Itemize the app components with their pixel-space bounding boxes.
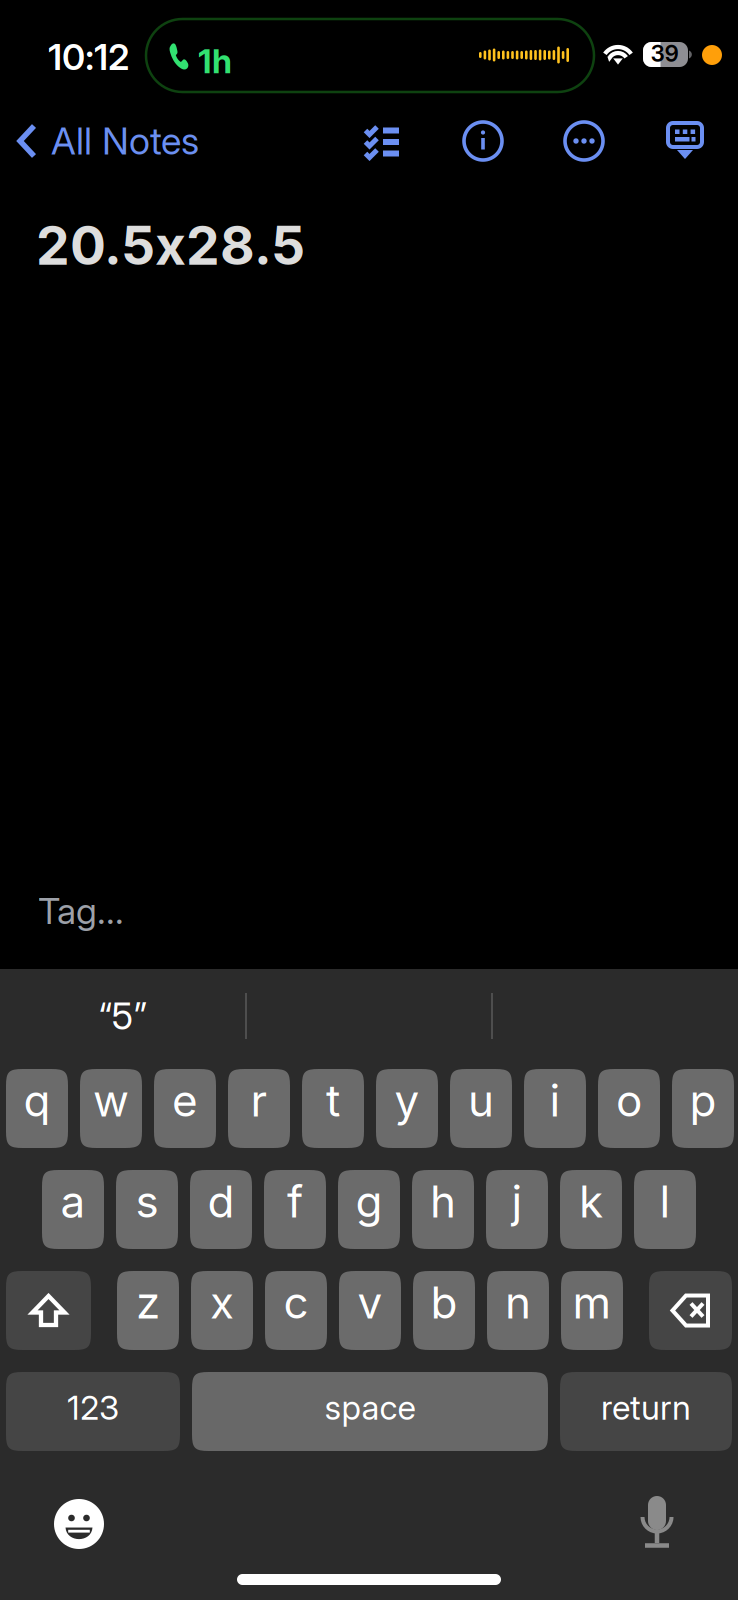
button[interactable]: q bbox=[6, 1069, 68, 1148]
button[interactable]: Emoji bbox=[39, 1484, 119, 1564]
staticText: l bbox=[659, 1175, 670, 1228]
button[interactable]: Dictate bbox=[617, 1482, 697, 1562]
staticText: space bbox=[324, 1387, 415, 1428]
button[interactable]: Tag... bbox=[38, 886, 198, 936]
button[interactable]: c bbox=[265, 1271, 327, 1350]
staticText: All Notes bbox=[51, 118, 199, 164]
button[interactable]: j bbox=[486, 1170, 548, 1249]
staticText: y bbox=[394, 1074, 419, 1127]
button[interactable]: i bbox=[524, 1069, 586, 1148]
staticText: q bbox=[23, 1074, 50, 1127]
button[interactable]: o bbox=[598, 1069, 660, 1148]
button[interactable]: “5” bbox=[0, 981, 246, 1051]
staticText: e bbox=[172, 1074, 198, 1127]
button[interactable]: y bbox=[376, 1069, 438, 1148]
button[interactable]: s bbox=[116, 1170, 178, 1249]
button[interactable]: e bbox=[154, 1069, 216, 1148]
staticText: g bbox=[355, 1175, 382, 1228]
staticText: 1h bbox=[198, 41, 232, 81]
staticText: 39 bbox=[650, 40, 678, 67]
staticText: v bbox=[357, 1276, 382, 1329]
button[interactable]: h bbox=[412, 1170, 474, 1249]
staticText: x bbox=[210, 1276, 234, 1329]
staticText: j bbox=[511, 1175, 522, 1228]
button[interactable]: r bbox=[228, 1069, 290, 1148]
button[interactable]: w bbox=[80, 1069, 142, 1148]
button[interactable]: Hide Keyboard bbox=[657, 112, 713, 168]
button[interactable]: space bbox=[192, 1372, 548, 1451]
staticText: r bbox=[250, 1074, 267, 1127]
button[interactable]: k bbox=[560, 1170, 622, 1249]
staticText: Tag... bbox=[38, 889, 124, 933]
button[interactable]: a bbox=[42, 1170, 104, 1249]
staticText: “5” bbox=[98, 993, 147, 1039]
staticText: w bbox=[93, 1074, 129, 1127]
button[interactable]: f bbox=[264, 1170, 326, 1249]
button[interactable]: d bbox=[190, 1170, 252, 1249]
button[interactable]: Info bbox=[455, 113, 511, 169]
button[interactable]: Checklist bbox=[354, 113, 410, 169]
button[interactable]: p bbox=[672, 1069, 734, 1148]
staticText: u bbox=[468, 1074, 494, 1127]
staticText: 20.5x28.5 bbox=[36, 213, 305, 277]
button[interactable]: g bbox=[338, 1170, 400, 1249]
button[interactable]: Delete bbox=[649, 1271, 732, 1350]
staticText: f bbox=[287, 1175, 303, 1228]
staticText: i bbox=[549, 1074, 560, 1127]
staticText: p bbox=[689, 1074, 716, 1127]
staticText: h bbox=[430, 1175, 456, 1228]
staticText: b bbox=[430, 1276, 457, 1329]
staticText: a bbox=[60, 1175, 85, 1228]
button[interactable]: l bbox=[634, 1170, 696, 1249]
button[interactable]: z bbox=[117, 1271, 179, 1350]
staticText: return bbox=[601, 1387, 691, 1428]
button[interactable]: t bbox=[302, 1069, 364, 1148]
staticText: z bbox=[136, 1276, 160, 1329]
button[interactable]: b bbox=[413, 1271, 475, 1350]
button[interactable]: x bbox=[191, 1271, 253, 1350]
staticText: t bbox=[326, 1074, 340, 1127]
button[interactable]: return bbox=[560, 1372, 732, 1451]
staticText: o bbox=[616, 1074, 642, 1127]
staticText: s bbox=[135, 1175, 158, 1228]
button[interactable]: u bbox=[450, 1069, 512, 1148]
button[interactable]: m bbox=[561, 1271, 623, 1350]
button[interactable]: Shift bbox=[6, 1271, 91, 1350]
staticText: c bbox=[283, 1276, 308, 1329]
staticText: n bbox=[505, 1276, 531, 1329]
staticText: k bbox=[579, 1175, 603, 1228]
button[interactable]: More bbox=[556, 113, 612, 169]
staticText: m bbox=[572, 1276, 611, 1329]
staticText: 123 bbox=[67, 1387, 119, 1428]
button[interactable]: 123 bbox=[6, 1372, 180, 1451]
staticText: d bbox=[207, 1175, 234, 1228]
button[interactable]: n bbox=[487, 1271, 549, 1350]
staticText: 10:12 bbox=[48, 35, 129, 79]
button[interactable]: All Notes bbox=[16, 113, 199, 169]
button[interactable]: v bbox=[339, 1271, 401, 1350]
